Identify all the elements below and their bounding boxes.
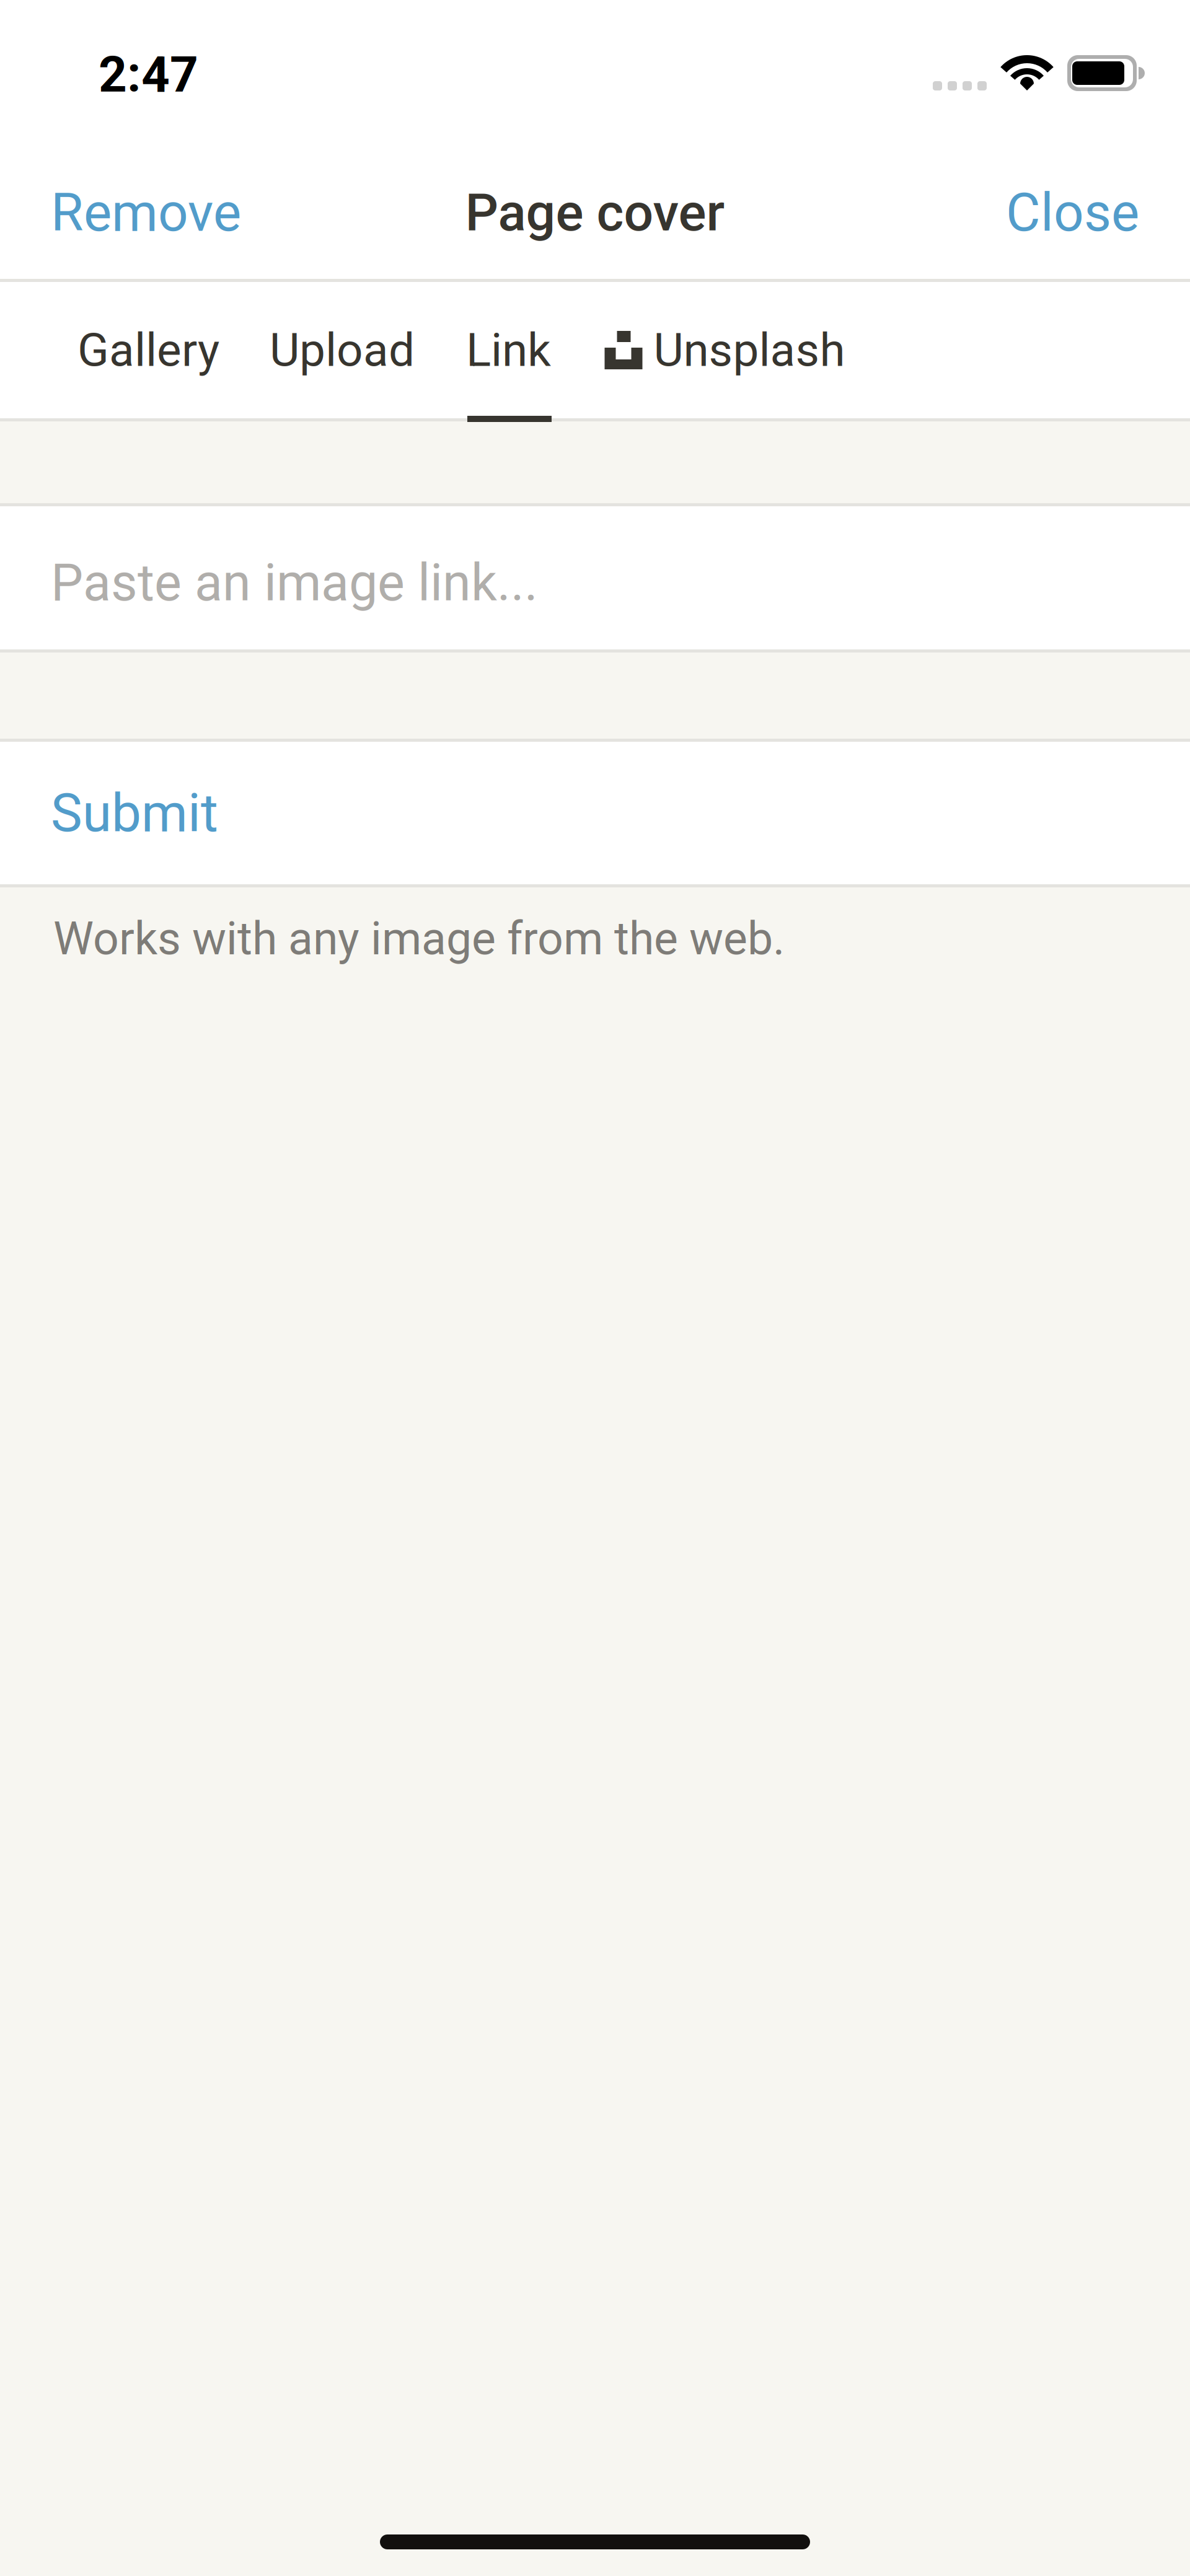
staticText: Unsplash <box>654 323 845 377</box>
button[interactable]: Paste an image link... <box>0 506 1190 649</box>
button[interactable]: Remove <box>51 163 241 262</box>
staticText: Submit <box>51 782 218 844</box>
staticText: Gallery <box>77 323 219 377</box>
staticText: Link <box>466 323 551 377</box>
button[interactable]: Upload <box>270 282 415 418</box>
button[interactable]: Gallery <box>77 282 219 418</box>
staticText: Paste an image link... <box>51 553 538 613</box>
button[interactable]: Close <box>1006 163 1139 262</box>
staticText: Page cover <box>465 182 725 243</box>
button[interactable]: Unsplash <box>605 282 845 418</box>
button[interactable]: Link <box>466 282 551 418</box>
staticText: Upload <box>270 323 415 377</box>
staticText: Close <box>1006 182 1139 244</box>
staticText: Works with any image from the web. <box>53 912 785 965</box>
button[interactable]: Submit <box>0 742 1190 884</box>
staticText: 2:47 <box>99 46 198 104</box>
staticText: Remove <box>51 182 241 244</box>
